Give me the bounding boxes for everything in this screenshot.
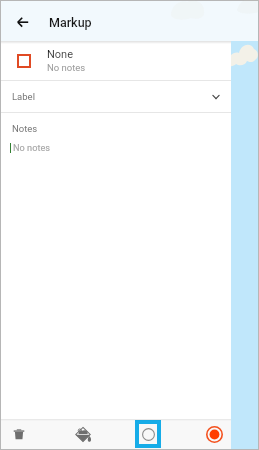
staticText: Label (12, 91, 35, 102)
button[interactable]: Markup (61, 419, 105, 449)
button[interactable]: Shape (139, 424, 157, 444)
staticText: Markup (49, 15, 92, 30)
staticText: No notes (13, 142, 51, 153)
button[interactable]: Delete (0, 419, 41, 449)
staticText: No notes (47, 62, 86, 73)
button[interactable]: Color (192, 419, 236, 449)
button[interactable]: Label (1, 81, 231, 112)
button[interactable]: Back (7, 5, 39, 37)
button[interactable]: No notes (1, 142, 231, 153)
staticText: Notes (12, 123, 38, 134)
button[interactable]: None (1, 41, 231, 80)
staticText: None (47, 48, 74, 61)
